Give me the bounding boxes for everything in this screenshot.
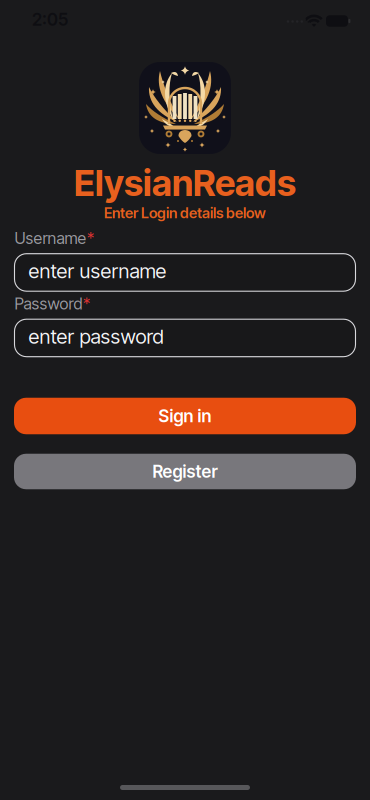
- staticText: enter password: [28, 325, 163, 348]
- staticText: ElysianReads: [74, 162, 296, 204]
- staticText: Username: [14, 229, 86, 248]
- staticText: Password: [14, 294, 82, 313]
- button[interactable]: Register: [14, 454, 356, 489]
- button[interactable]: enter password: [14, 319, 355, 357]
- staticText: Enter Login details below: [104, 204, 266, 222]
- staticText: Sign in: [158, 406, 211, 426]
- staticText: enter username: [28, 259, 166, 283]
- button[interactable]: enter username: [14, 254, 355, 291]
- staticText: *: [83, 294, 90, 313]
- staticText: *: [87, 229, 94, 248]
- button[interactable]: Sign in: [14, 398, 356, 434]
- staticText: Register: [152, 461, 217, 482]
- staticText: 2:05: [32, 9, 68, 30]
